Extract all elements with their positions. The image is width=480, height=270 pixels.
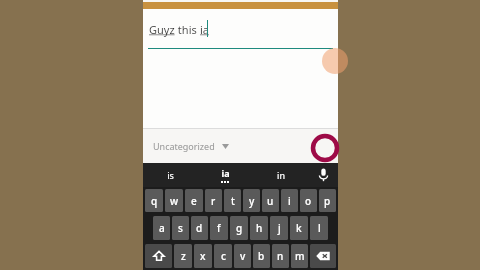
button[interactable]: k (290, 216, 308, 240)
button[interactable]: y (243, 189, 260, 212)
button[interactable]: ia (198, 163, 253, 187)
button[interactable]: Key (145, 244, 172, 268)
button[interactable]: p (319, 189, 336, 212)
staticText: in (277, 169, 285, 181)
staticText: n (277, 249, 284, 263)
staticText: t (231, 194, 235, 208)
button[interactable]: s (172, 216, 189, 240)
staticText: is (167, 169, 174, 181)
staticText: p (324, 194, 331, 208)
staticText: x (200, 249, 206, 263)
staticText: Guyz (149, 22, 175, 37)
staticText: v (240, 249, 246, 263)
button[interactable]: u (262, 189, 279, 212)
staticText: m (295, 249, 305, 263)
button[interactable]: Key (310, 244, 336, 268)
staticText: u (267, 194, 274, 208)
button[interactable]: t (224, 189, 241, 212)
button[interactable]: l (310, 216, 328, 240)
staticText: f (217, 221, 221, 235)
button[interactable]: n (272, 244, 289, 268)
button[interactable]: Uncategorized (149, 136, 233, 156)
button[interactable]: c (214, 244, 232, 268)
button[interactable]: v (234, 244, 251, 268)
staticText: a (159, 221, 165, 235)
staticText: c (221, 249, 226, 263)
staticText: s (178, 221, 183, 235)
other: Backspace (316, 251, 330, 261)
button[interactable]: q (145, 189, 163, 212)
button[interactable]: r (205, 189, 222, 212)
staticText: ia (200, 22, 210, 37)
staticText: k (296, 221, 302, 235)
button[interactable]: i (281, 189, 298, 212)
button[interactable]: Guyz (143, 9, 338, 128)
staticText: w (170, 194, 179, 208)
button[interactable]: x (194, 244, 212, 268)
staticText: this (175, 22, 200, 37)
staticText: d (196, 221, 203, 235)
other: Shift (153, 250, 165, 262)
staticText: h (256, 221, 263, 235)
staticText: z (181, 249, 186, 263)
button[interactable]: is (143, 163, 198, 187)
button[interactable]: o (300, 189, 317, 212)
staticText: q (151, 194, 158, 208)
staticText: g (236, 221, 243, 235)
button[interactable]: m (291, 244, 308, 268)
button[interactable]: j (270, 216, 288, 240)
staticText: b (258, 249, 265, 263)
button[interactable]: h (250, 216, 268, 240)
button[interactable]: w (165, 189, 183, 212)
button[interactable]: Voice input (308, 163, 338, 187)
staticText: y (249, 194, 255, 208)
staticText: l (318, 221, 321, 235)
button[interactable]: f (210, 216, 228, 240)
button[interactable]: a (153, 216, 170, 240)
button[interactable]: b (253, 244, 270, 268)
staticText: i (288, 194, 291, 208)
button[interactable]: in (253, 163, 308, 187)
button[interactable]: d (191, 216, 208, 240)
staticText: ia (221, 167, 230, 179)
staticText: o (305, 194, 312, 208)
button[interactable]: e (185, 189, 203, 212)
staticText: e (191, 194, 197, 208)
button[interactable]: z (174, 244, 192, 268)
staticText: j (278, 221, 281, 235)
staticText: Uncategorized (153, 140, 215, 152)
staticText: r (211, 194, 216, 208)
button[interactable]: Add note (322, 48, 348, 74)
button[interactable]: g (230, 216, 248, 240)
